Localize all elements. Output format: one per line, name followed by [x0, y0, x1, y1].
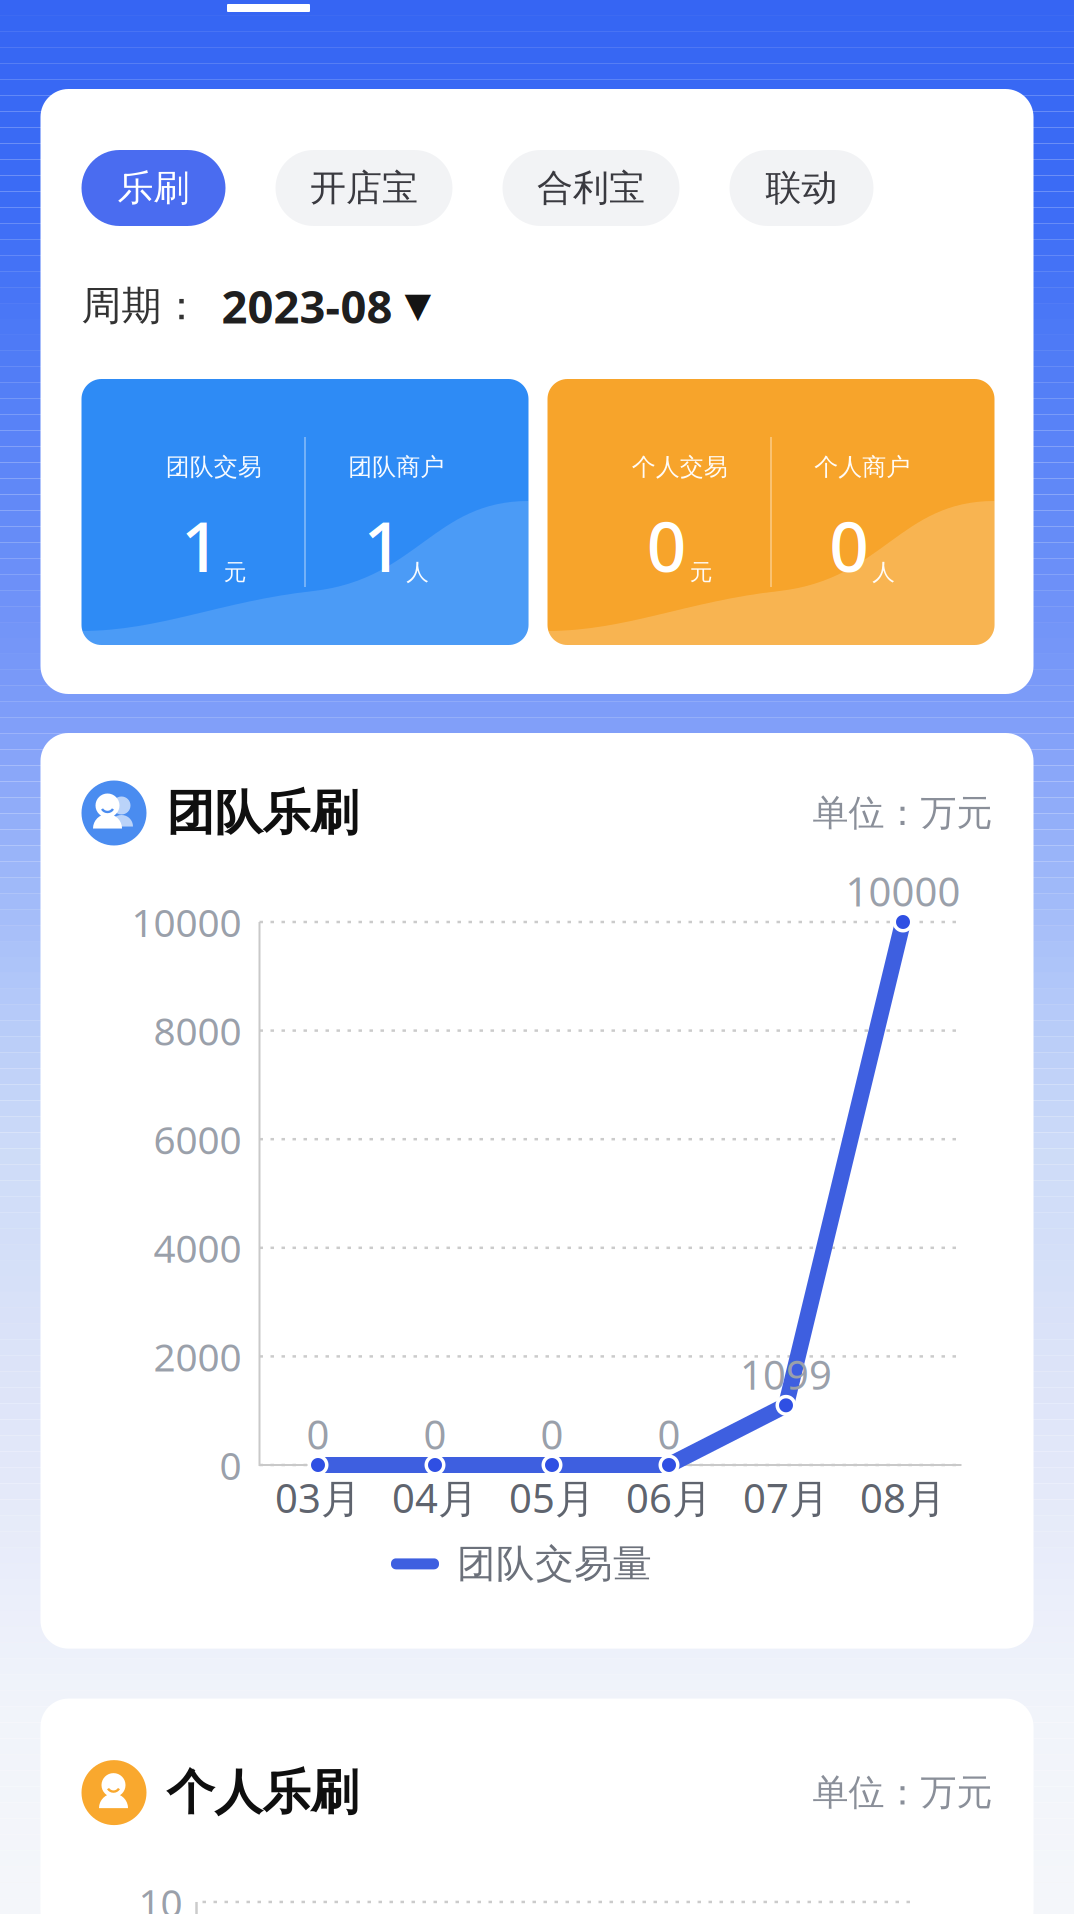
staticText: 团队交易 [166, 452, 262, 482]
staticText: 0 [657, 1407, 680, 1460]
staticText: 08月 [860, 1471, 946, 1524]
staticText: 4000 [153, 1222, 241, 1273]
staticText: 2000 [153, 1331, 241, 1382]
staticText: 10000 [131, 896, 241, 948]
staticText: 0 [540, 1407, 563, 1460]
staticText: 人 [406, 558, 429, 586]
staticText: 10000 [845, 864, 960, 917]
staticText: 0 [647, 499, 687, 591]
staticText: 团队乐刷 [166, 783, 358, 842]
staticText: 团队商户 [348, 452, 444, 482]
button[interactable]: 乐刷 [81, 150, 225, 226]
staticText: ▼ [404, 285, 431, 325]
staticText: 06月 [626, 1471, 712, 1524]
staticText: 0 [219, 1439, 241, 1491]
staticText: 05月 [509, 1471, 595, 1524]
staticText: 团队交易量 [457, 1540, 652, 1588]
staticText: 0 [306, 1407, 329, 1460]
button[interactable]: 开店宝 [275, 150, 452, 226]
staticText: 1 [181, 499, 221, 591]
staticText: 1 [363, 499, 403, 591]
staticText: 单位：万元 [812, 1770, 992, 1815]
staticText: 人 [872, 558, 895, 586]
staticText: 0 [423, 1407, 446, 1460]
staticText: 元 [690, 558, 713, 586]
button[interactable]: 合利宝 [502, 150, 679, 226]
staticText: 1099 [740, 1348, 832, 1401]
staticText: 元 [224, 558, 247, 586]
staticText: 03月 [275, 1471, 361, 1524]
staticText: 联动 [765, 166, 837, 210]
staticText: 乐刷 [117, 166, 189, 210]
staticText: 个人乐刷 [166, 1763, 358, 1822]
staticText: 个人商户 [814, 452, 910, 482]
staticText: 单位：万元 [812, 791, 992, 835]
staticText: 开店宝 [310, 166, 418, 210]
staticText: 8000 [153, 1005, 241, 1056]
staticText: 合利宝 [537, 166, 645, 210]
staticText: 个人交易 [632, 452, 728, 482]
staticText: 周期： [81, 281, 201, 330]
staticText: 04月 [392, 1471, 478, 1524]
staticText: 6000 [153, 1113, 241, 1165]
staticText: 0 [829, 499, 869, 591]
button[interactable]: 周期： [81, 275, 992, 337]
staticText: 2023-08 [221, 276, 392, 336]
button[interactable]: 联动 [729, 150, 873, 226]
staticText: 07月 [743, 1471, 829, 1524]
staticText: 10 [138, 1877, 182, 1914]
